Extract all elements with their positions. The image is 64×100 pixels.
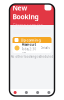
staticText: New Booking xyxy=(12,3,38,21)
staticText: Details xyxy=(40,46,49,50)
button[interactable]: Tab xyxy=(21,89,32,96)
staticText: Upcoming xyxy=(20,37,41,43)
staticText: Choose a service xyxy=(12,22,42,27)
button[interactable]: Tab xyxy=(43,89,54,96)
button[interactable]: Tab xyxy=(9,89,21,96)
staticText: Today 2:30 PM xyxy=(21,47,36,54)
button[interactable]: Tab xyxy=(32,89,43,96)
staticText: No other bookings scheduled xyxy=(10,55,53,58)
staticText: 9:41 xyxy=(12,0,19,4)
button[interactable]: Calendar xyxy=(44,3,51,10)
staticText: Haircut xyxy=(21,42,36,47)
